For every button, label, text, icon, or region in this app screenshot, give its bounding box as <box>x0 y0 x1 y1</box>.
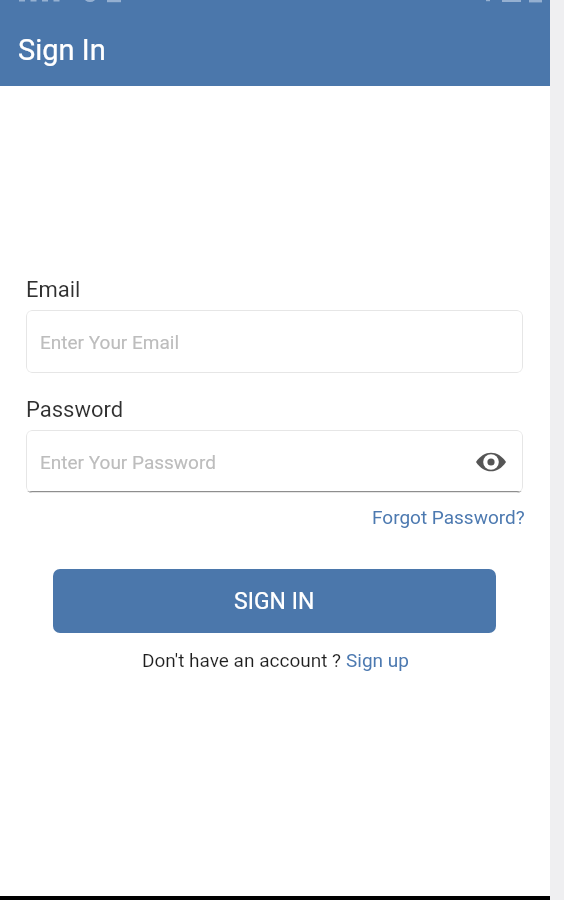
staticText: Forgot Password? <box>372 506 525 528</box>
staticText: Enter Your Password <box>40 451 216 473</box>
button[interactable]: Forgot Password? <box>362 500 550 534</box>
staticText: Sign In <box>18 33 106 67</box>
staticText: Sign up <box>346 649 409 671</box>
button[interactable]: Sign up <box>346 643 409 677</box>
button[interactable]: Enter Your Email <box>26 310 523 373</box>
staticText: Email <box>26 277 81 303</box>
staticText: SIGN IN <box>234 588 315 615</box>
staticText: Enter Your Email <box>40 331 180 353</box>
button[interactable]: Show password <box>471 442 511 482</box>
button[interactable]: SIGN IN <box>53 569 496 633</box>
button[interactable]: Enter Your Password <box>26 430 523 493</box>
staticText: Password <box>26 397 124 423</box>
staticText: Don't have an account ? <box>142 649 346 671</box>
